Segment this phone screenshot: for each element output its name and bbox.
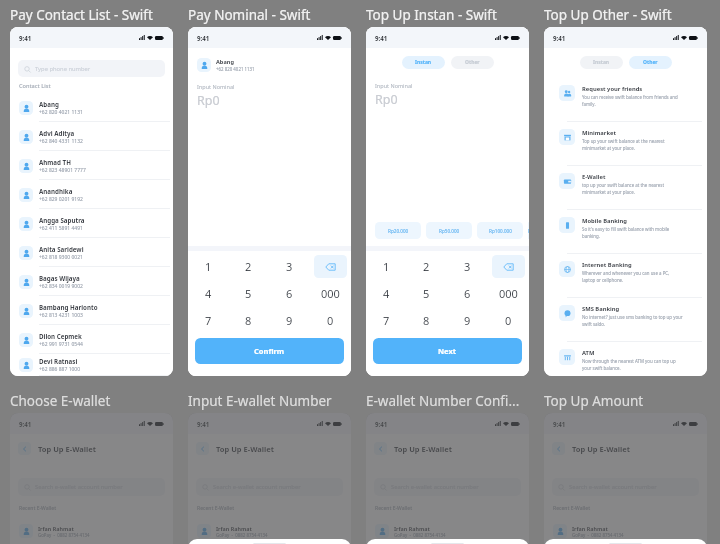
button[interactable]: Instan [580,56,623,69]
staticText: Next [438,346,457,356]
button[interactable]: Angga Saputra [10,209,173,238]
button[interactable]: 3 [447,253,488,280]
button[interactable]: Anandhika [10,180,173,209]
staticText: +62 823 48901 7777 [39,167,86,174]
button[interactable]: 4 [188,280,228,307]
button[interactable]: Internet Banking [544,261,707,297]
button[interactable]: Dilon Cepmek [10,325,173,354]
staticText: 9:41 [19,34,32,42]
button[interactable]: Bambang Harionto [10,296,173,325]
staticText: 0 [505,313,512,328]
button[interactable]: ATM [544,349,707,376]
button[interactable]: SMS Banking [544,305,707,341]
staticText: Top Up E-Wallet [572,444,630,454]
staticText: Choose E-wallet [10,392,111,410]
staticText: Anandhika [39,187,73,195]
button[interactable]: Irfan Rahmat [10,517,173,544]
button[interactable]: Back [374,442,387,455]
staticText: Confirm [254,346,285,356]
staticText: GoPay - 0882 8754 4134 [38,532,90,538]
staticText: Rp20.000 [388,228,409,234]
button[interactable]: 1 [366,253,406,280]
staticText: +62 829 0201 9192 [39,196,83,203]
staticText: Contact List [19,82,51,90]
staticText: top up your swift balance at the nearest… [582,182,683,195]
button[interactable]: E-Wallet [544,173,707,209]
button[interactable]: Other [451,56,494,69]
button[interactable]: 7 [188,307,228,334]
button[interactable]: Backspace [488,253,529,280]
staticText: 9:41 [197,420,210,428]
button[interactable]: Irfan Rahmat [366,517,529,544]
button[interactable]: Next [373,338,522,364]
button[interactable]: 9 [269,307,310,334]
button[interactable]: Type phone number [18,60,165,77]
staticText: So it's easy to fill swift balance with … [582,226,683,239]
staticText: +62 991 9731 0544 [39,341,83,348]
button[interactable]: 000 [310,280,351,307]
staticText: +62 820 4021 1131 [216,66,255,72]
staticText: 9:41 [375,34,388,42]
button[interactable]: Rp20.000 [375,222,421,239]
button[interactable]: Request your friends [544,85,707,121]
staticText: Irfan Rahmat [216,525,252,532]
button[interactable]: Rp200.000 [528,222,529,239]
button[interactable]: 5 [228,280,269,307]
button[interactable]: Minimarket [544,129,707,165]
staticText: Rp50.000 [439,228,460,234]
button[interactable]: 0 [488,307,529,334]
button[interactable]: 2 [228,253,269,280]
staticText: 8 [423,313,430,328]
button[interactable]: 9 [447,307,488,334]
button[interactable]: Mobile Banking [544,217,707,253]
button[interactable]: Rp100.000 [477,222,523,239]
button[interactable]: Irfan Rahmat [188,517,351,544]
staticText: Instan [593,59,610,66]
staticText: Advi Aditya [39,129,75,137]
button[interactable]: 7 [366,307,406,334]
button[interactable]: 8 [406,307,447,334]
button[interactable]: Ahmad TH [10,151,173,180]
staticText: 3 [464,259,471,274]
staticText: Internet Banking [582,261,632,269]
staticText: Irfan Rahmat [572,525,608,532]
button[interactable]: 6 [447,280,488,307]
button[interactable]: Back [552,442,565,455]
staticText: 5 [245,286,252,301]
button[interactable]: 6 [269,280,310,307]
button[interactable]: 000 [488,280,529,307]
staticText: E-Wallet [582,173,606,181]
staticText: 3 [286,259,293,274]
button[interactable]: 3 [269,253,310,280]
button[interactable]: Backspace [310,253,351,280]
button[interactable]: Irfan Rahmat [544,517,707,544]
button[interactable]: 8 [228,307,269,334]
button[interactable]: Devi Ratnasi [10,354,173,376]
staticText: Top Up Instan - Swift [366,6,497,24]
button[interactable]: Abang [10,93,173,122]
staticText: Wherever and whenever you can use a PC, … [582,270,683,283]
button[interactable]: Anita Saridewi [10,238,173,267]
button[interactable]: Advi Aditya [10,122,173,151]
button[interactable]: Other [629,56,672,69]
button[interactable]: Instan [402,56,445,69]
staticText: Request your friends [582,85,643,93]
staticText: +62 840 4331 1132 [39,138,83,145]
staticText: 8 [245,313,252,328]
button[interactable]: Confirm [195,338,344,364]
button[interactable]: 4 [366,280,406,307]
staticText: Top Up Amount [544,392,644,410]
button[interactable]: 1 [188,253,228,280]
button[interactable]: Back [18,442,31,455]
button[interactable]: 5 [406,280,447,307]
button[interactable]: Back [196,442,209,455]
staticText: GoPay - 0882 8754 4134 [216,532,268,538]
button[interactable]: Rp50.000 [426,222,472,239]
button[interactable]: 0 [310,307,351,334]
button[interactable]: Bagas Wijaya [10,267,173,296]
button[interactable]: 2 [406,253,447,280]
